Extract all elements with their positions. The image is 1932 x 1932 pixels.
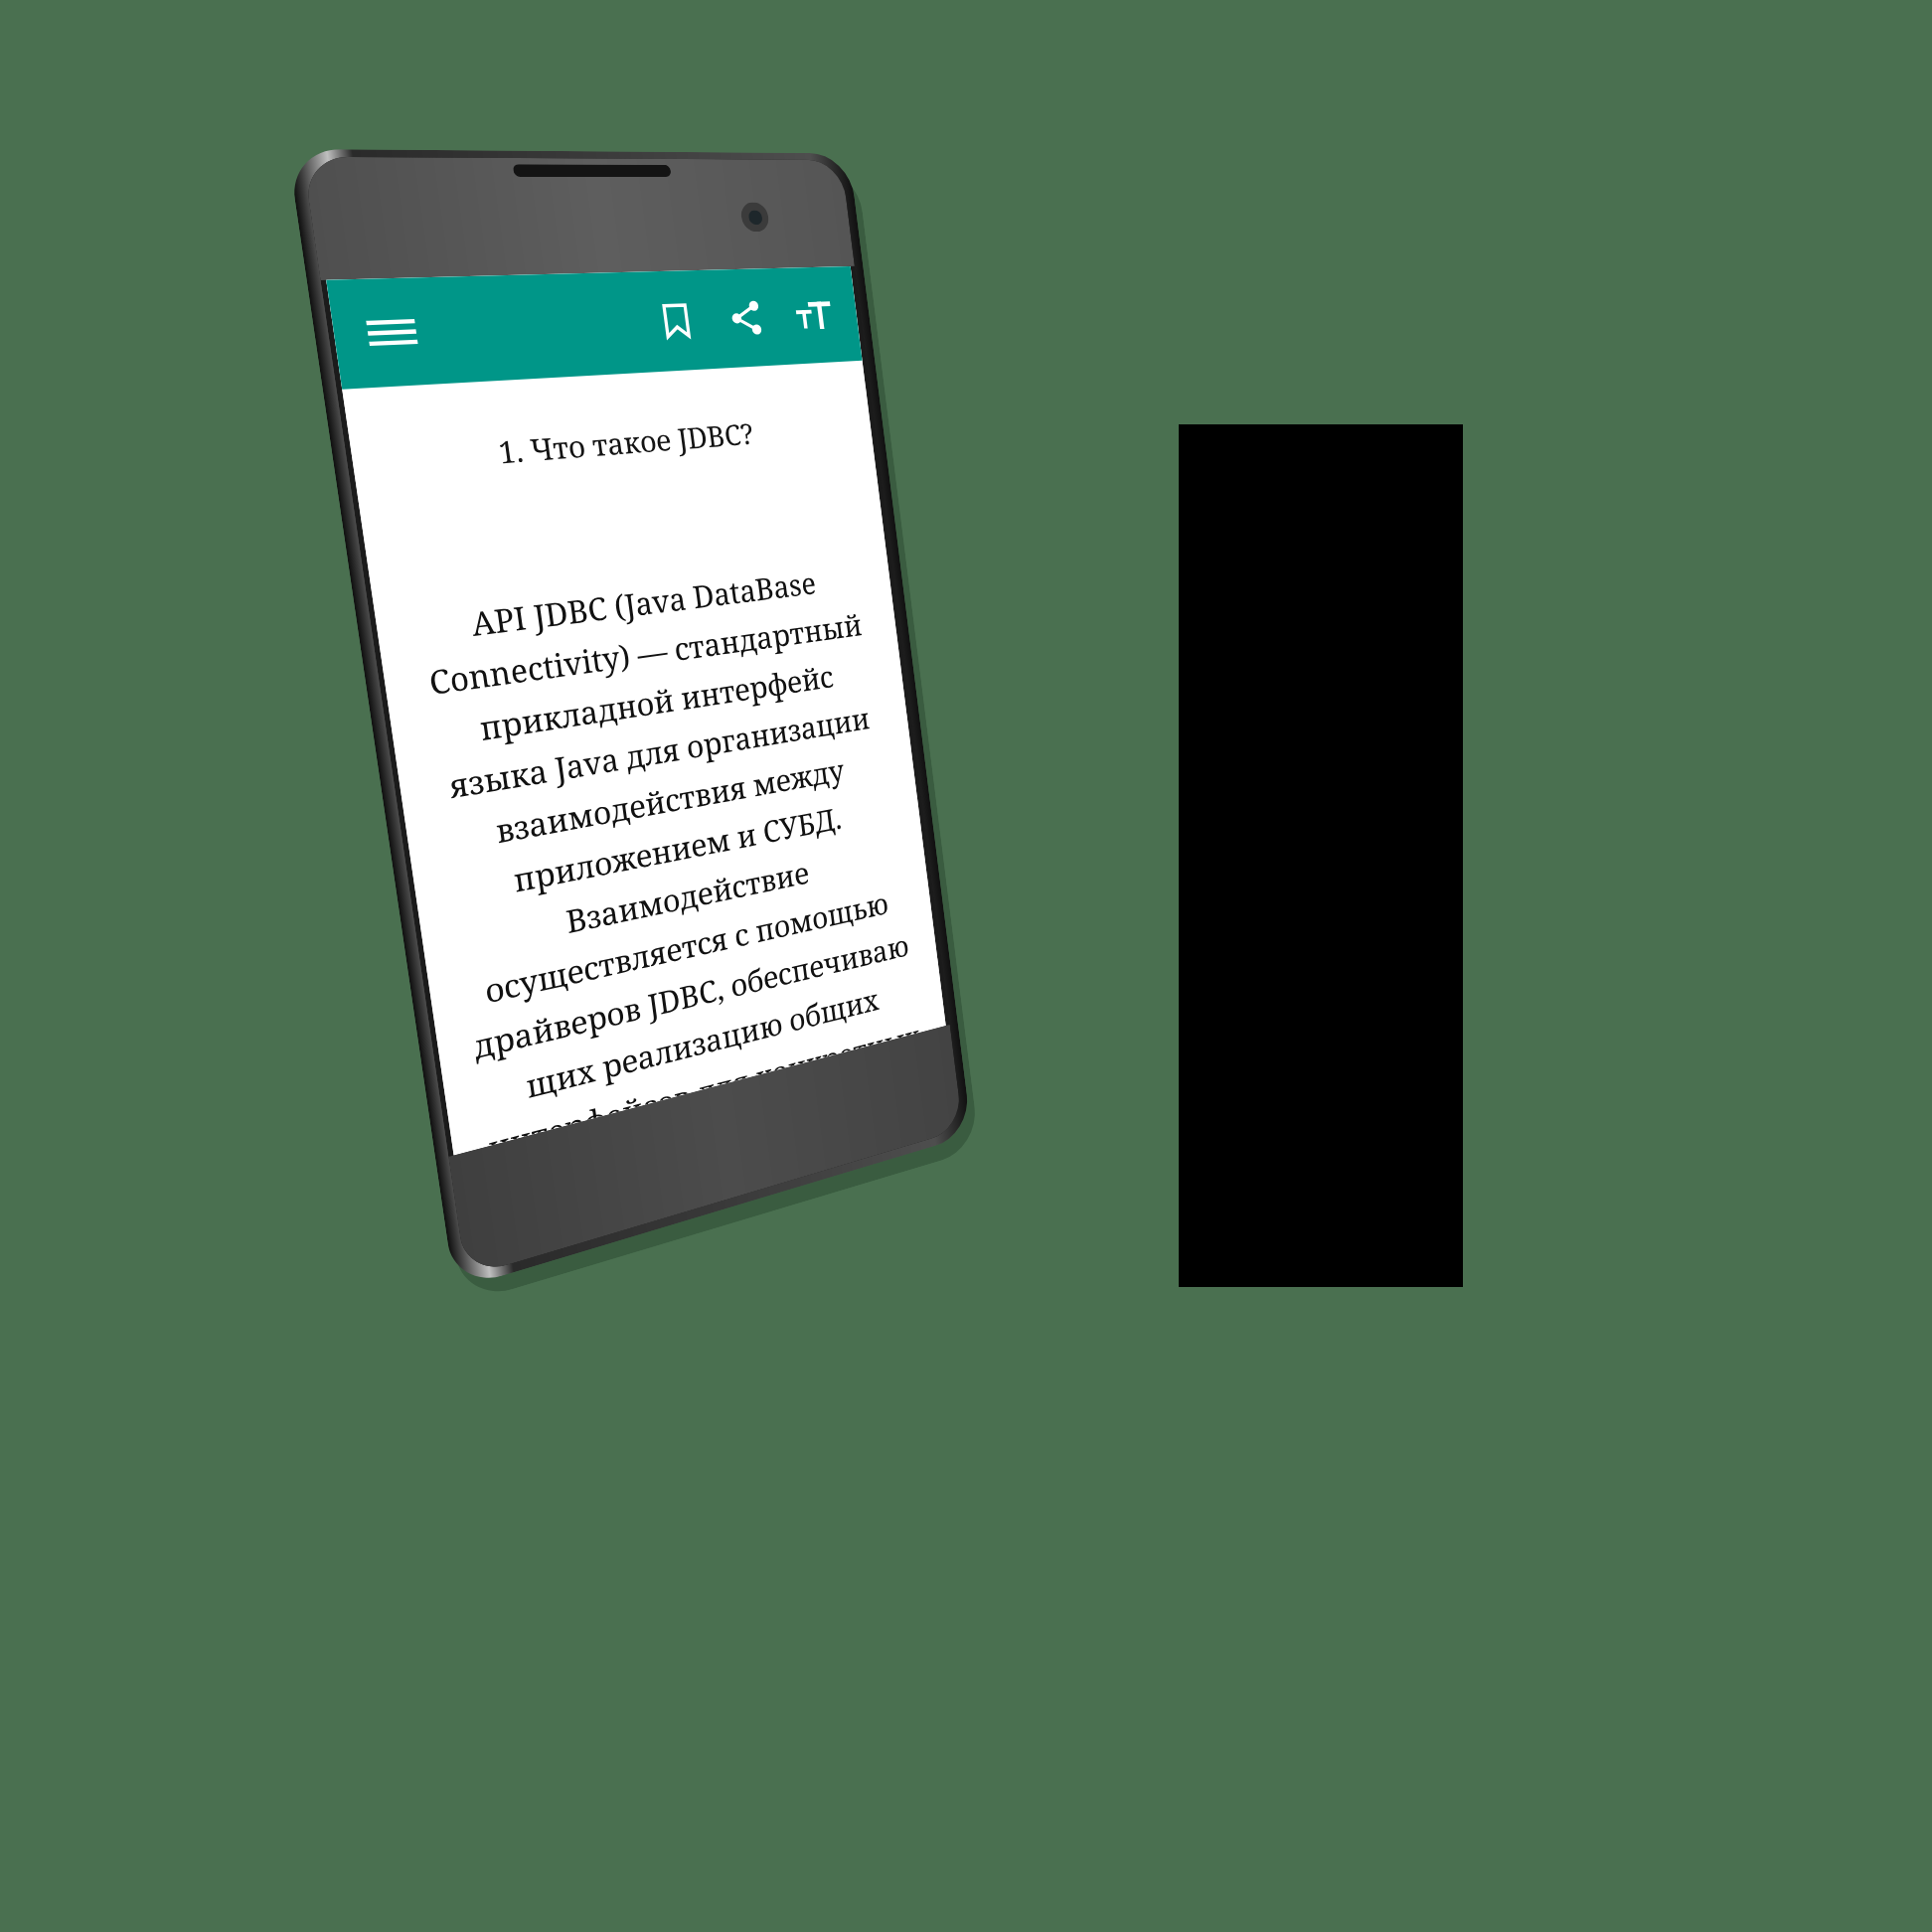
button[interactable]: Open navigation menu — [354, 299, 429, 366]
staticText: API JDBC (Java DataBase Connectivity) — … — [408, 557, 922, 1147]
button[interactable]: Bookmark — [644, 290, 708, 352]
button[interactable]: Share — [715, 288, 777, 349]
staticText: 1. Что такое JDBC? — [383, 407, 847, 481]
button[interactable]: Text size — [784, 286, 843, 345]
